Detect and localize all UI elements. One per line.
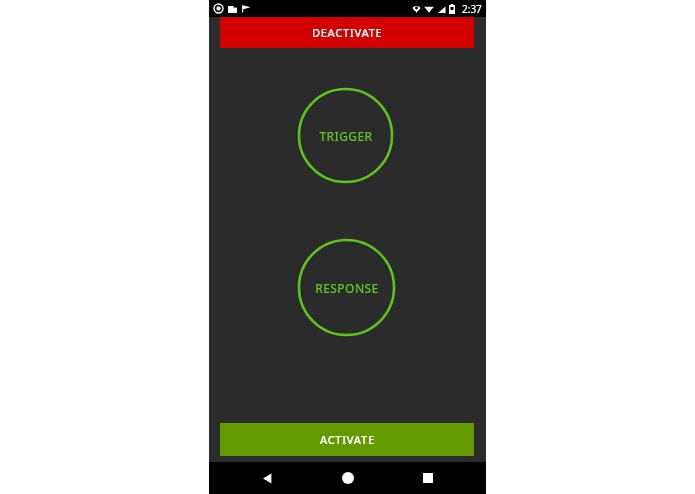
staticText: 2:37: [462, 2, 482, 16]
staticText: TRIGGER: [319, 128, 373, 144]
staticText: ACTIVATE: [320, 432, 375, 447]
button[interactable]: Back: [244, 462, 290, 494]
button[interactable]: DEACTIVATE: [220, 17, 474, 48]
button[interactable]: Home: [325, 462, 371, 494]
button[interactable]: ACTIVATE: [220, 423, 474, 456]
button[interactable]: Recent apps: [405, 462, 451, 494]
staticText: DEACTIVATE: [312, 25, 383, 40]
button[interactable]: TRIGGER: [296, 86, 395, 185]
button[interactable]: RESPONSE: [296, 237, 397, 338]
staticText: RESPONSE: [315, 280, 379, 296]
